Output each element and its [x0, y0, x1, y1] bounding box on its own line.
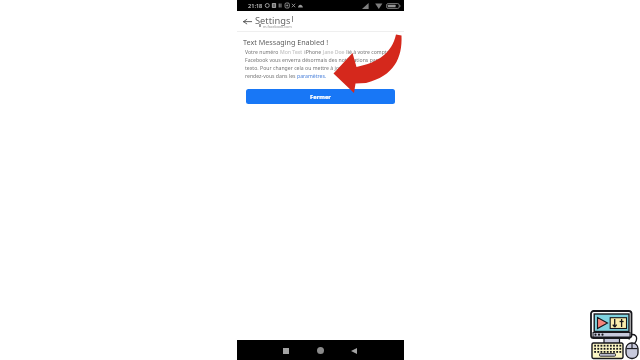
- staticText: Mon Text: [280, 48, 303, 55]
- staticText: rendez-vous dans les: [245, 72, 297, 79]
- staticText: Facebook vous enverra désormais des noti…: [245, 56, 378, 63]
- staticText: Votre numéro: [245, 48, 280, 55]
- staticText: Fermer: [310, 93, 331, 101]
- staticText: Jane Doe: [323, 48, 345, 55]
- button[interactable]: Home: [313, 343, 328, 358]
- staticText: texto. Pour changer cela ou mettre à jou…: [245, 64, 372, 71]
- button[interactable]: Fermer: [246, 89, 395, 104]
- staticText: 21:18: [248, 2, 263, 10]
- staticText: lié à votre compte.: [345, 48, 391, 55]
- button[interactable]: Back: [243, 18, 252, 25]
- staticText: iPhone: [303, 48, 323, 55]
- staticText: Text Messaging Enabled !: [243, 37, 329, 47]
- staticText: m.facebook.com: [263, 24, 292, 29]
- staticText: Settings: [255, 14, 291, 27]
- staticText: paramètres.: [297, 72, 327, 79]
- button[interactable]: Recents: [278, 343, 293, 358]
- button[interactable]: Back: [346, 343, 361, 358]
